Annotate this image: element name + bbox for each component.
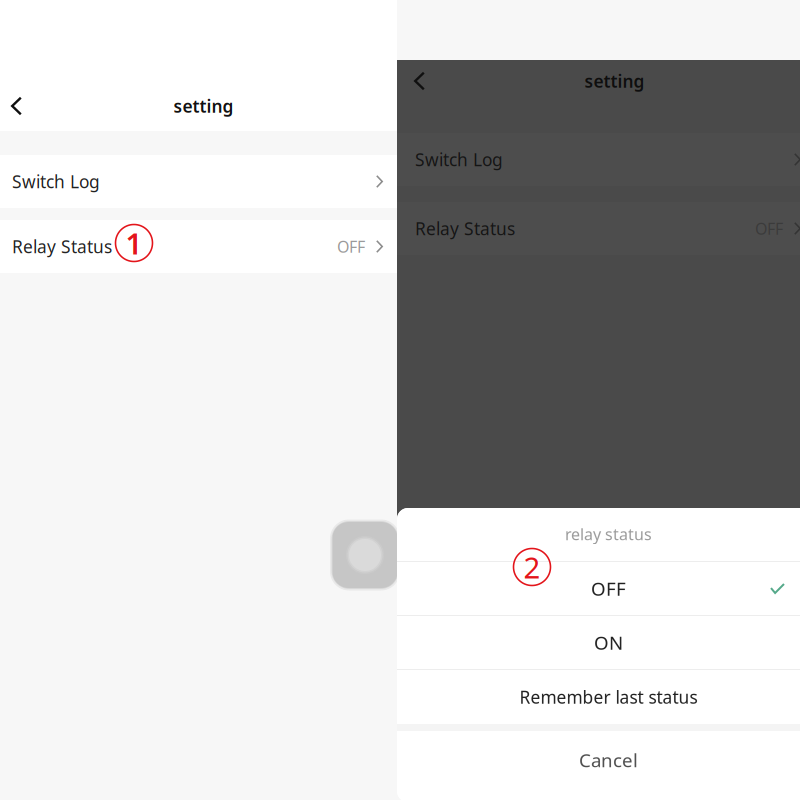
staticText: OFF xyxy=(755,218,783,239)
staticText: 2 xyxy=(523,547,540,586)
button[interactable]: Relay Status xyxy=(0,220,397,273)
staticText: OFF xyxy=(591,576,626,601)
staticText: relay status xyxy=(565,523,652,545)
staticText: OFF xyxy=(337,236,365,257)
staticText: ON xyxy=(594,630,623,655)
staticText: Switch Log xyxy=(415,148,503,171)
staticText: Switch Log xyxy=(12,170,100,193)
staticText: setting xyxy=(584,69,644,92)
staticText: Relay Status xyxy=(12,235,112,258)
staticText: Remember last status xyxy=(519,685,697,708)
staticText: setting xyxy=(173,94,233,117)
button[interactable]: OFF xyxy=(397,562,800,615)
button[interactable]: Back xyxy=(0,88,34,123)
button[interactable]: Remember last status xyxy=(397,670,800,724)
staticText: 1 xyxy=(125,223,142,262)
button[interactable]: Switch Log xyxy=(0,155,397,208)
staticText: Relay Status xyxy=(415,217,515,240)
staticText: Cancel xyxy=(579,748,638,772)
button[interactable]: ON xyxy=(397,616,800,669)
button[interactable]: Cancel xyxy=(397,731,800,789)
